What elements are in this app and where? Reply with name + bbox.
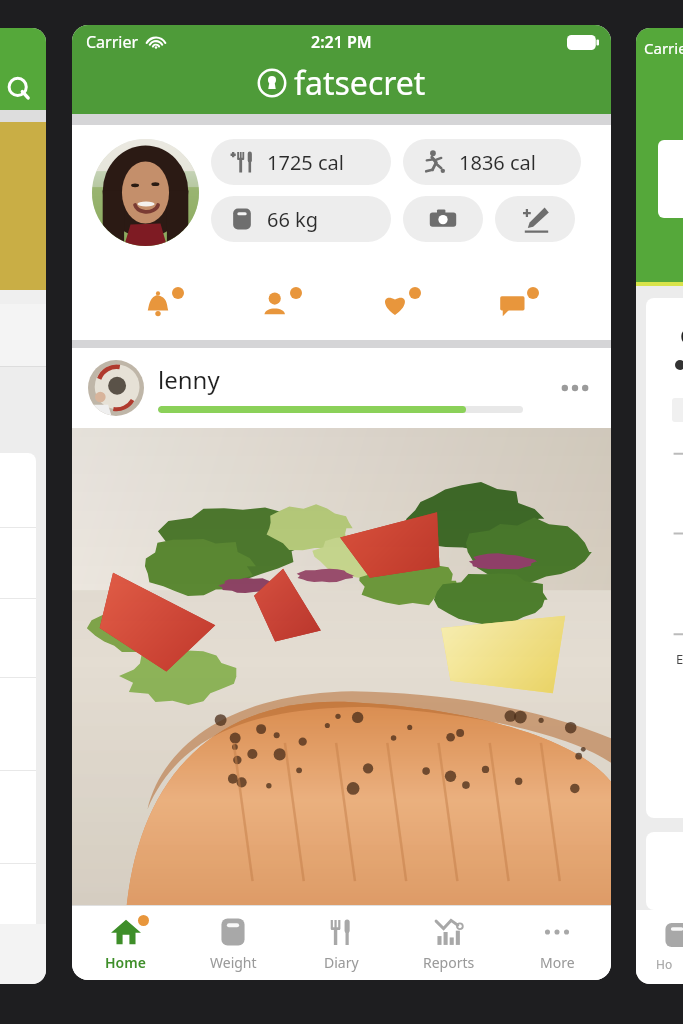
staticText: Home [105,953,146,972]
staticText: 66 kg [267,206,319,233]
button[interactable]: Add entry [495,196,575,242]
staticText: 2:21 PM [311,31,372,53]
button[interactable]: lenny [72,348,611,428]
staticText: C [680,320,683,350]
staticText: fatsecret [294,61,426,105]
button[interactable]: Notifications [132,284,196,324]
button[interactable]: Likes [369,284,433,324]
button[interactable]: More [503,906,611,980]
button[interactable]: Take photo [403,196,483,242]
button[interactable]: Reports [395,906,503,980]
staticText: Ho [656,956,673,972]
staticText: Carrier [86,31,139,53]
staticText: E [676,650,683,668]
button[interactable]: Friends [250,284,314,324]
button[interactable]: More options [555,368,595,408]
staticText: 1836 cal [459,149,536,176]
staticText: lenny [158,363,220,396]
button[interactable]: Messages [487,284,551,324]
staticText: More [540,953,575,972]
staticText: Weight [210,953,257,972]
button[interactable]: Home [72,906,179,980]
button[interactable]: Diary [287,906,395,980]
button[interactable]: Weight [179,906,287,980]
staticText: Carrier [644,38,683,58]
button[interactable]: 1836 cal [403,139,581,185]
staticText: 1725 cal [267,149,344,176]
staticText: Diary [324,953,359,972]
button[interactable]: 1725 cal [211,139,391,185]
staticText: Reports [423,953,475,972]
button[interactable]: 66 kg [211,196,391,242]
